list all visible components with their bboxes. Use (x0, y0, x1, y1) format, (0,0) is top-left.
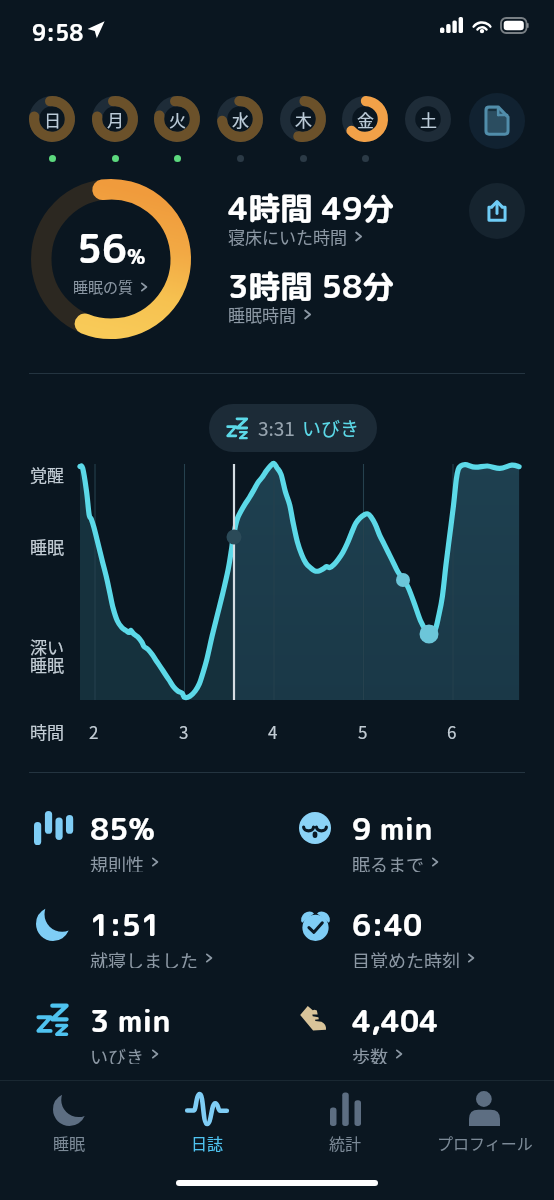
button[interactable]: 水 (209, 94, 271, 164)
button[interactable]: 3 min (32, 1000, 272, 1064)
staticText: 寝床にいた時間 (228, 224, 347, 249)
staticText: 眠るまで (352, 851, 424, 872)
staticText: 時間 (30, 719, 64, 744)
staticText: 日 (44, 107, 61, 132)
staticText: 2 (89, 719, 99, 744)
staticText: 1:51 (90, 904, 161, 946)
staticText: 85% (90, 808, 155, 850)
staticText: 日誌 (191, 1131, 224, 1154)
button[interactable]: 月 (84, 94, 146, 164)
button[interactable]: 睡眠 (0, 1081, 138, 1165)
staticText: 4,404 (352, 1000, 439, 1042)
button[interactable]: Share (469, 183, 525, 239)
button[interactable]: 9 min (294, 808, 534, 872)
staticText: 3 (179, 719, 189, 744)
staticText: 4時間 49分 (228, 186, 395, 231)
button[interactable] (228, 186, 408, 242)
staticText: 56 (77, 221, 127, 275)
button[interactable]: 85% (32, 808, 272, 872)
staticText: 6:40 (352, 904, 423, 946)
staticText: 3 min (90, 1000, 171, 1042)
button[interactable]: 日誌 (138, 1081, 276, 1165)
staticText: 目覚めた時刻 (352, 947, 460, 968)
staticText: % (127, 241, 146, 270)
staticText: 9:58 (32, 17, 84, 48)
staticText: 6 (447, 719, 457, 744)
staticText: 統計 (329, 1131, 362, 1154)
button[interactable]: 3:31 (209, 404, 377, 452)
staticText: 睡眠時間 (228, 302, 296, 327)
staticText: 木 (295, 107, 312, 132)
staticText: 3:31 (258, 414, 295, 442)
button[interactable]: 6:40 (294, 904, 534, 968)
staticText: 土 (420, 107, 437, 132)
staticText: 9 min (352, 808, 433, 850)
staticText: 就寝しました (90, 947, 198, 968)
button[interactable]: Sleep notes (469, 93, 525, 149)
button[interactable]: 統計 (276, 1081, 415, 1165)
button[interactable]: 火 (146, 94, 208, 164)
staticText: 金 (357, 107, 374, 132)
staticText: 睡眠 (30, 534, 64, 559)
button[interactable]: 1:51 (32, 904, 272, 968)
staticText: 深い 睡眠 (30, 634, 64, 677)
staticText: 覚醒 (30, 462, 64, 487)
staticText: 睡眠の質 (73, 276, 134, 298)
button[interactable]: 土 (397, 94, 459, 164)
staticText: 5 (358, 719, 368, 744)
button[interactable]: 日 (21, 94, 83, 164)
staticText: 火 (169, 107, 186, 132)
button[interactable]: 56 (31, 179, 191, 339)
staticText: いびき (302, 414, 360, 442)
staticText: 4 (268, 719, 278, 744)
button[interactable]: 金 (334, 94, 396, 164)
staticText: プロフィール (437, 1131, 533, 1154)
button[interactable]: 木 (272, 94, 334, 164)
staticText: 歩数 (352, 1043, 388, 1064)
staticText: 規則性 (90, 851, 144, 872)
staticText: 睡眠 (53, 1131, 86, 1154)
staticText: 月 (107, 107, 124, 132)
button[interactable] (228, 264, 408, 320)
staticText: 3時間 58分 (228, 264, 395, 309)
staticText: 水 (232, 107, 249, 132)
button[interactable]: プロフィール (415, 1081, 554, 1165)
button[interactable]: 4,404 (294, 1000, 534, 1064)
staticText: いびき (90, 1043, 144, 1064)
